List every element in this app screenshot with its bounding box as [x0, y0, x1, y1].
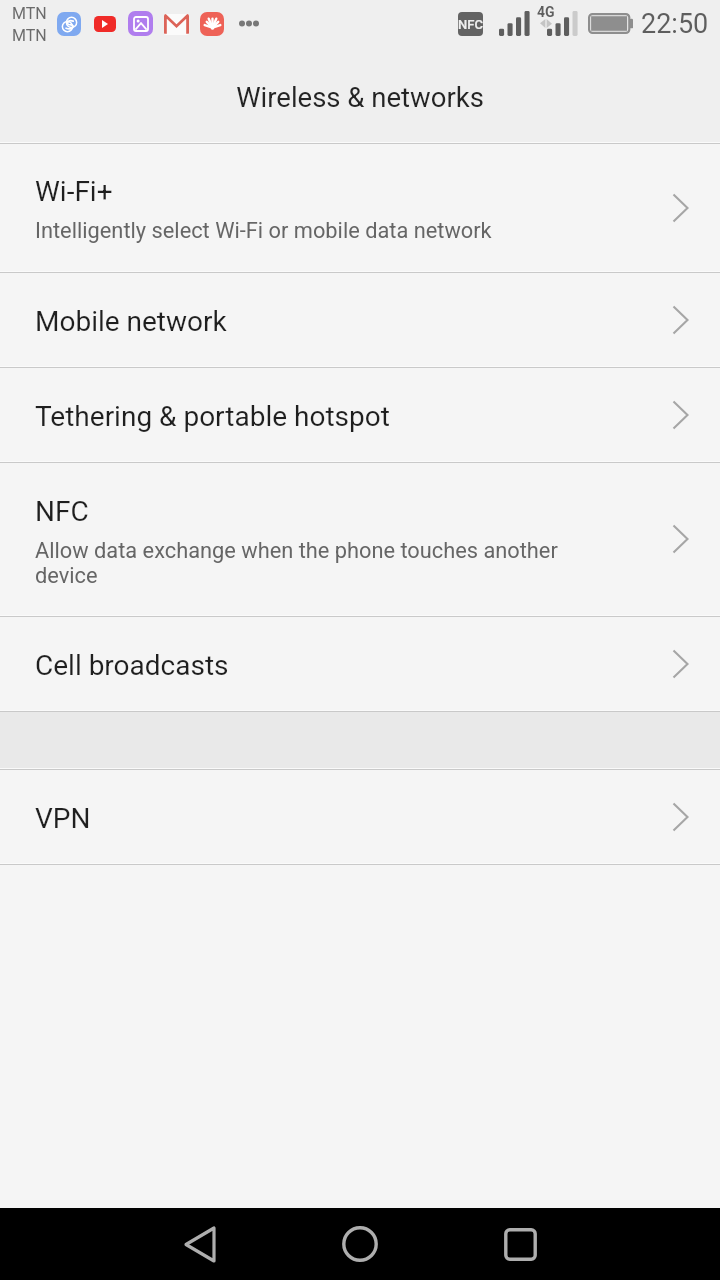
button[interactable]: Wi-Fi+	[0, 144, 720, 271]
staticText: NFC	[35, 495, 89, 528]
staticText: MTN	[12, 26, 47, 45]
button[interactable]: Tethering & portable hotspot	[0, 368, 720, 461]
staticText: Cell broadcasts	[35, 649, 229, 682]
staticText: 22:50	[641, 8, 709, 40]
staticText: Tethering & portable hotspot	[35, 400, 390, 433]
staticText: Mobile network	[35, 305, 227, 338]
staticText: Wireless & networks	[236, 81, 484, 113]
button[interactable]: Mobile network	[0, 273, 720, 366]
staticText: NFC	[458, 17, 483, 32]
button[interactable]: Back	[164, 1208, 236, 1280]
staticText: Allow data exchange when the phone touch…	[35, 538, 610, 588]
button[interactable]: Cell broadcasts	[0, 617, 720, 710]
button[interactable]: NFC	[0, 463, 720, 615]
staticText: Wi-Fi+	[35, 175, 113, 208]
button[interactable]: VPN	[0, 770, 720, 863]
staticText: VPN	[35, 802, 91, 835]
staticText: MTN	[12, 4, 47, 23]
button[interactable]: Recent apps	[484, 1208, 556, 1280]
staticText: 4G	[537, 4, 555, 20]
staticText: Intelligently select Wi-Fi or mobile dat…	[35, 218, 492, 244]
button[interactable]: Home	[324, 1208, 396, 1280]
